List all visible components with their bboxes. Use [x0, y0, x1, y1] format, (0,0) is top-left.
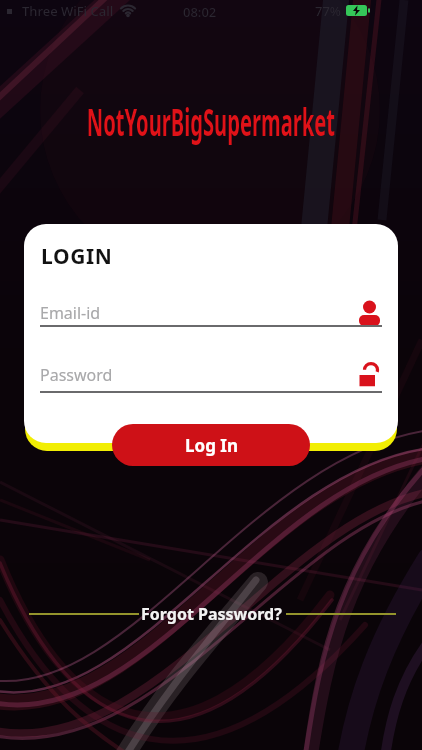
staticText: LOGIN: [41, 242, 113, 271]
button[interactable]: Forgot Password?: [141, 603, 282, 625]
staticText: Forgot Password?: [141, 603, 282, 625]
staticText: Password: [40, 364, 113, 386]
staticText: Email-id: [40, 302, 101, 324]
staticText: NotYourBigSupermarket: [87, 96, 335, 146]
button[interactable]: Email-id: [40, 298, 382, 328]
staticText: 77%: [315, 2, 341, 20]
button[interactable]: Password: [40, 360, 382, 390]
staticText: 08:02: [183, 3, 217, 21]
button[interactable]: Log In: [112, 424, 310, 466]
staticText: Three WiFi Call: [22, 2, 114, 20]
staticText: Log In: [185, 434, 238, 457]
